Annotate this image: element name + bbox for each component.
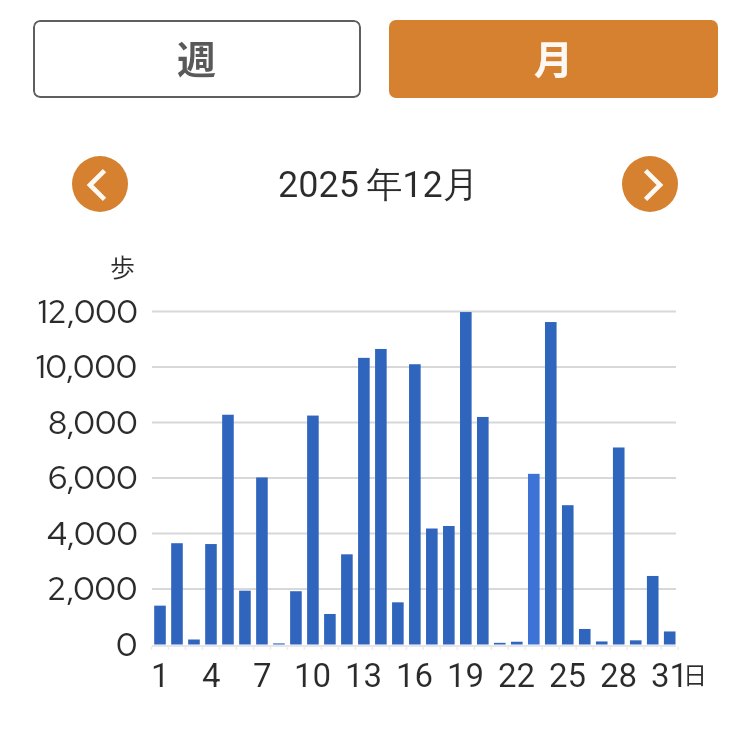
staticText: 4 — [202, 656, 221, 695]
staticText: 日 — [683, 656, 707, 691]
staticText: 4,000 — [47, 512, 138, 554]
staticText: 歩 — [110, 248, 136, 284]
staticText: 1 — [151, 656, 170, 695]
staticText: 12,000 — [38, 290, 138, 332]
staticText: 週 — [177, 29, 217, 85]
staticText: 16 — [396, 656, 434, 695]
staticText: 13 — [345, 656, 383, 695]
button[interactable]: 週 — [33, 20, 361, 98]
staticText: 22 — [498, 656, 536, 695]
staticText: 31 — [651, 656, 689, 695]
staticText: 8,000 — [48, 401, 138, 443]
staticText: 0 — [116, 623, 138, 665]
staticText: 月 — [534, 29, 574, 85]
staticText: 2,000 — [47, 567, 138, 609]
staticText: 10,000 — [36, 345, 138, 387]
staticText: 7 — [253, 656, 272, 695]
staticText: 6,000 — [48, 456, 138, 498]
button[interactable]: 前の月 — [72, 156, 128, 212]
staticText: 25 — [549, 656, 587, 695]
button[interactable]: 月 — [389, 20, 718, 98]
staticText: 28 — [600, 656, 638, 695]
staticText: 19 — [447, 656, 485, 695]
staticText: 10 — [294, 656, 332, 695]
button[interactable]: 次の月 — [622, 156, 678, 212]
staticText: 2025 年12月 — [278, 162, 479, 207]
